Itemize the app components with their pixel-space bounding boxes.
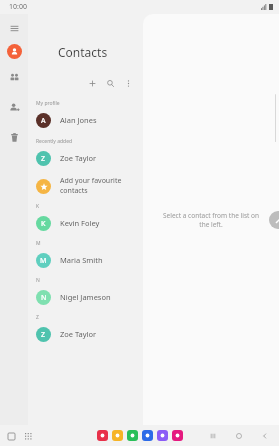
staticText: Contacts (58, 44, 108, 60)
button[interactable]: App 6 (172, 430, 183, 441)
button[interactable]: Apps (22, 430, 34, 442)
button[interactable]: N (28, 285, 143, 309)
button[interactable]: App 5 (157, 430, 168, 441)
staticText: Zoe Taylor (60, 329, 97, 339)
button[interactable]: Back (259, 430, 271, 442)
staticText: Recently added (36, 138, 73, 145)
button[interactable]: Trash (4, 127, 24, 147)
button[interactable]: Edit (269, 211, 279, 229)
staticText: K (41, 219, 46, 229)
staticText: K (36, 203, 40, 210)
staticText: A (41, 116, 46, 126)
staticText: N (36, 277, 40, 284)
button[interactable]: App 1 (97, 430, 108, 441)
button[interactable]: A (28, 108, 143, 132)
staticText: 10:00 (9, 2, 27, 12)
staticText: Add your favourite contacts (60, 176, 143, 196)
button[interactable]: Add contact (4, 97, 24, 117)
button[interactable]: Groups (4, 67, 24, 87)
staticText: Zoe Taylor (60, 153, 97, 163)
button[interactable]: App 2 (112, 430, 123, 441)
button[interactable]: Add your favourite contacts (28, 174, 143, 198)
button[interactable]: Z (28, 146, 143, 170)
button[interactable]: Contacts (7, 44, 22, 59)
staticText: Kevin Foley (60, 218, 100, 228)
staticText: Nigel Jameson (60, 292, 111, 302)
button[interactable]: Z (28, 322, 143, 346)
button[interactable]: App 4 (142, 430, 153, 441)
button[interactable]: Add (83, 74, 101, 92)
button[interactable]: M (28, 248, 143, 272)
button[interactable]: K (28, 211, 143, 235)
staticText: M (40, 256, 47, 266)
staticText: Maria Smith (60, 255, 103, 265)
button[interactable]: App 3 (127, 430, 138, 441)
staticText: N (41, 293, 47, 303)
staticText: My profile (36, 100, 60, 107)
button[interactable]: Recent apps (207, 430, 219, 442)
button[interactable]: Menu (4, 18, 24, 38)
staticText: Z (41, 154, 46, 164)
staticText: Z (36, 314, 39, 321)
button[interactable]: Recents (5, 430, 17, 442)
button[interactable]: Home (233, 430, 245, 442)
staticText: Alan Jones (60, 115, 97, 125)
button[interactable]: Search (101, 74, 119, 92)
staticText: Z (41, 330, 46, 340)
staticText: M (36, 240, 41, 247)
button[interactable]: More options (119, 74, 137, 92)
staticText: Select a contact from the list on the le… (161, 211, 261, 229)
